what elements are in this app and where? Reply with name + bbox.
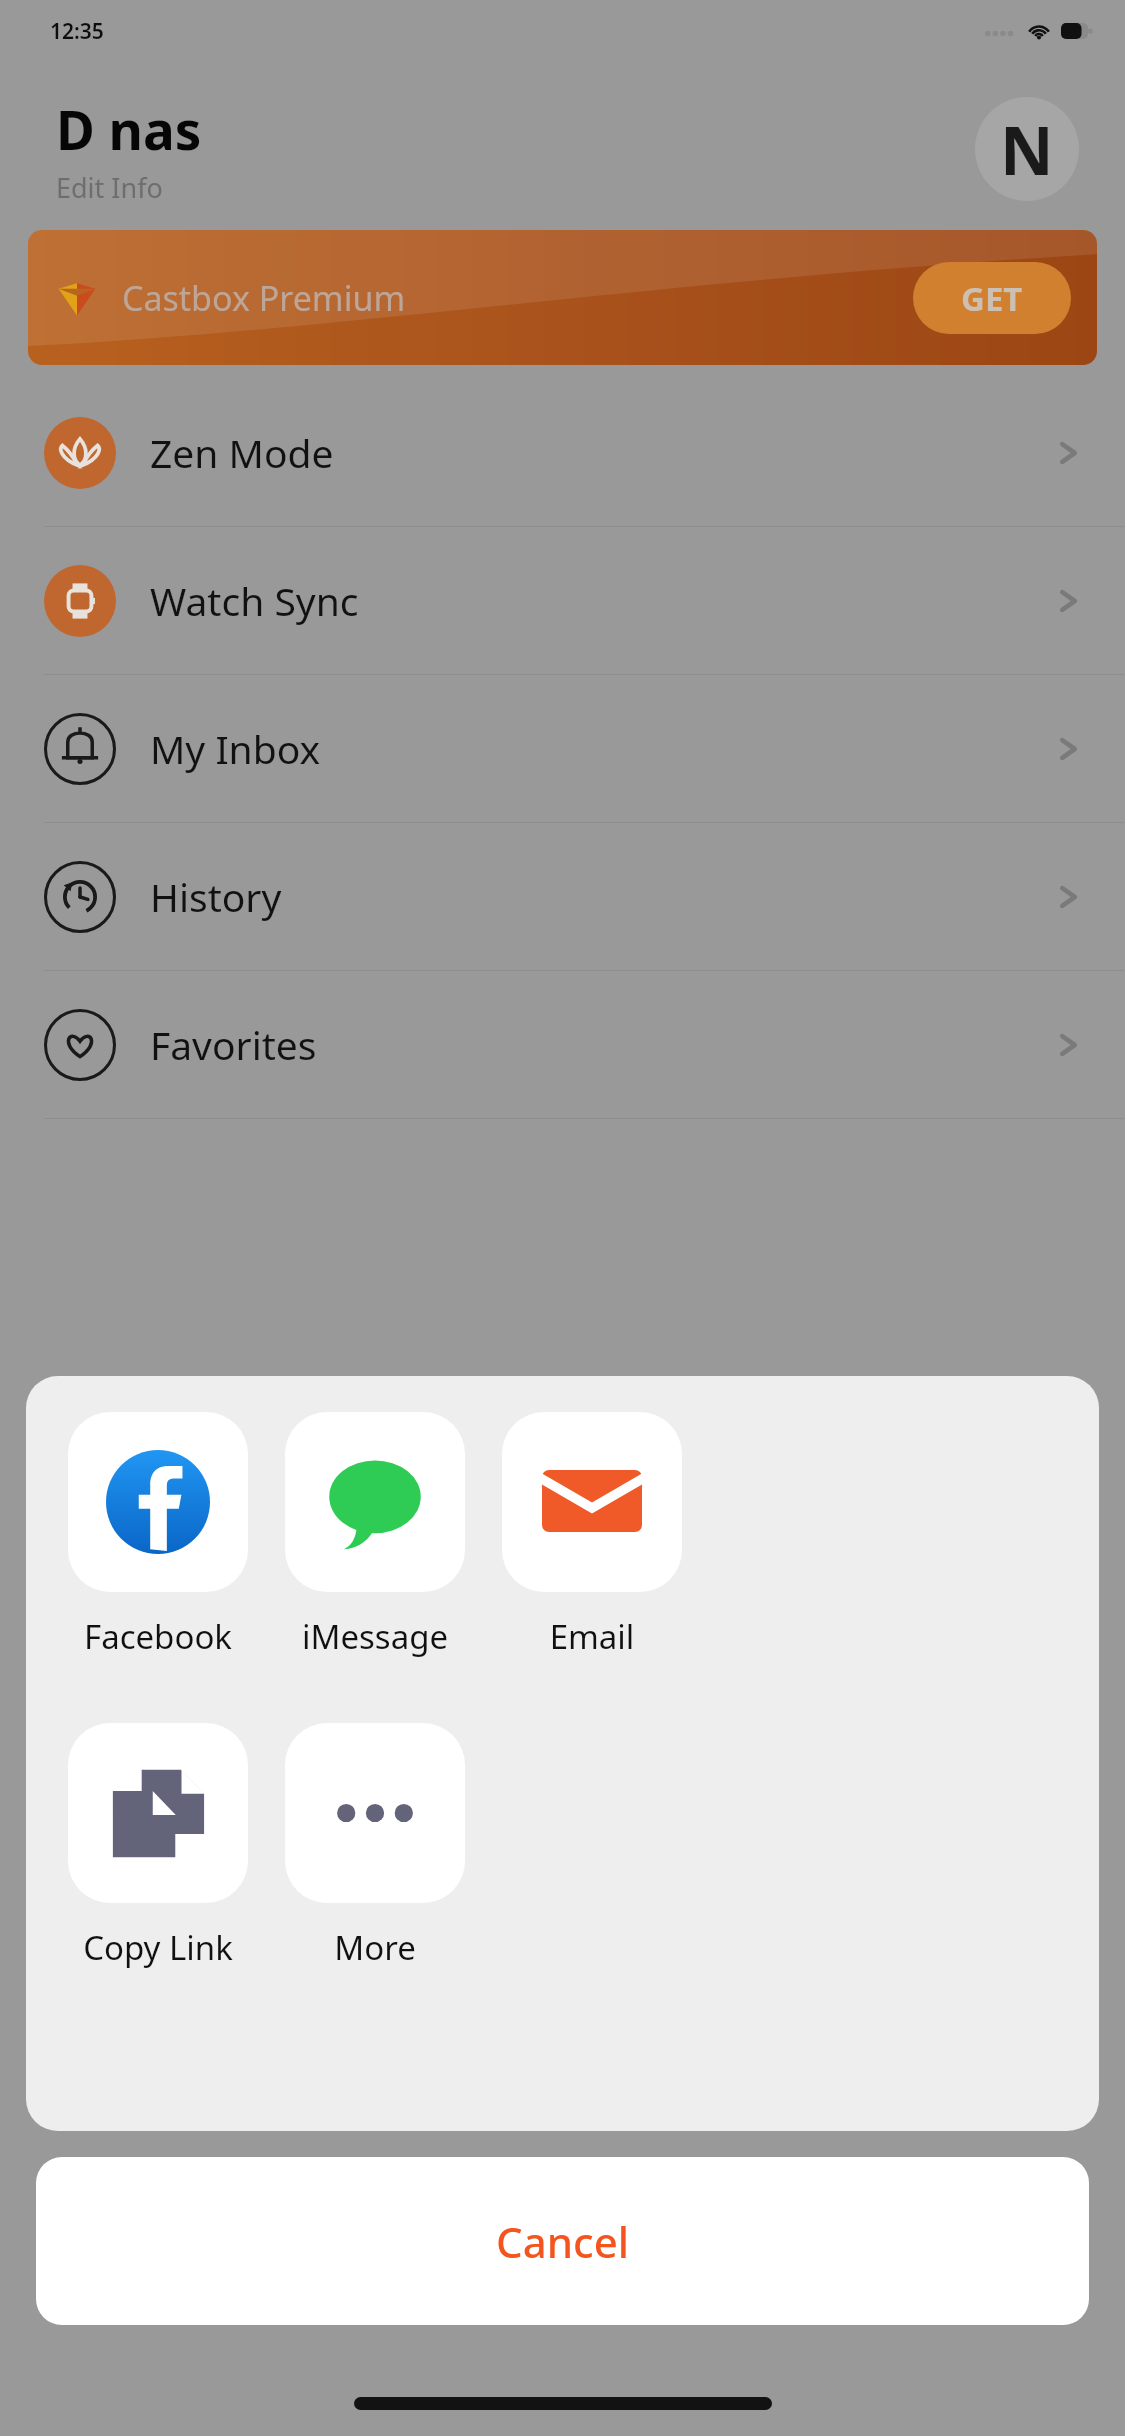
staticText: My Inbox [150,722,321,775]
button[interactable]: More [285,1723,465,1970]
button[interactable]: Edit Info [56,169,163,206]
staticText: iMessage [285,1614,465,1659]
button[interactable]: Cancel [36,2157,1089,2325]
staticText: Copy Link [68,1925,248,1970]
staticText: Cancel [496,2213,630,2270]
button[interactable]: Castbox Premium [28,230,1097,365]
staticText: More [285,1925,465,1970]
button[interactable]: Zen Mode [0,379,1125,526]
staticText: GET [961,276,1023,321]
button[interactable]: Copy Link [68,1723,248,1970]
staticText: Castbox Premium [122,275,406,321]
button[interactable]: Profile avatar [975,97,1079,201]
staticText: D nas [56,93,202,165]
button[interactable]: Email [502,1412,682,1659]
button[interactable]: My Inbox [0,675,1125,822]
button[interactable]: iMessage [285,1412,465,1659]
button[interactable]: Favorites [0,971,1125,1118]
button[interactable]: History [0,823,1125,970]
staticText: History [150,870,282,923]
button[interactable]: Facebook [68,1412,248,1659]
staticText: N [1000,104,1054,194]
staticText: Watch Sync [150,574,359,627]
staticText: Facebook [68,1614,248,1659]
staticText: Zen Mode [150,426,334,479]
button[interactable]: Watch Sync [0,527,1125,674]
button[interactable]: GET [913,262,1071,334]
staticText: Favorites [150,1018,317,1071]
staticText: Email [502,1614,682,1659]
staticText: 12:35 [50,17,104,46]
